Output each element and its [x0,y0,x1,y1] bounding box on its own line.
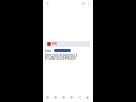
staticText: ete transmis a l'operateur [45,55,78,59]
button[interactable]: Reply all [52,94,59,101]
button[interactable] [45,41,90,47]
button[interactable]: More options [84,0,92,7]
button[interactable]: Share [76,94,83,101]
button[interactable]: Favorite [79,0,87,7]
button[interactable]: Back [43,0,51,7]
button[interactable]: Reply [44,94,51,101]
button[interactable]: Delete [84,94,91,101]
staticText: et valide sous 48 heures. [45,57,77,61]
button[interactable]: Forward [60,94,67,101]
staticText: SFR [52,42,57,46]
staticText: Salut [45,49,52,52]
staticText: Votre code de paiement a [45,53,78,57]
button[interactable]: Label [68,94,75,101]
